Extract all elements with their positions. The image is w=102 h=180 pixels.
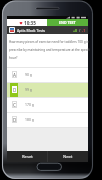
button[interactable]: D	[7, 112, 88, 127]
staticText: 99 g	[25, 87, 32, 92]
staticText: END TEST	[59, 20, 76, 25]
button[interactable]: D	[7, 82, 88, 97]
staticText: /	[79, 28, 81, 33]
staticText: C	[13, 102, 16, 108]
button[interactable]: Reset	[7, 151, 47, 162]
staticText: D	[13, 87, 17, 93]
staticText: 170 g	[25, 102, 34, 107]
button[interactable]: END TEST	[47, 19, 88, 26]
staticText: prescribe by maintaining and temperature…	[9, 48, 90, 52]
staticText: D	[13, 117, 17, 123]
button[interactable]: C	[7, 97, 88, 112]
staticText: +0	[73, 28, 78, 33]
staticText: How many pieces of exercise need for tod…	[9, 40, 90, 44]
staticText: hour?	[9, 56, 18, 60]
button[interactable]: Next	[48, 151, 88, 162]
staticText: A	[13, 72, 16, 78]
button[interactable]: A	[7, 67, 88, 82]
staticText: 10:35	[24, 20, 36, 26]
staticText: Reset	[22, 154, 33, 160]
staticText: Next	[63, 154, 73, 160]
staticText: Aptis Mock Tests	[17, 28, 45, 33]
staticText: -1	[82, 28, 86, 33]
staticText: 180 g	[25, 117, 34, 122]
staticText: 90 g	[25, 72, 32, 77]
